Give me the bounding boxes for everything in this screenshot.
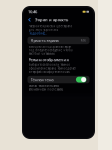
staticText: Авто <box>80 39 86 42</box>
staticText: Тёмная тема <box>30 77 53 82</box>
staticText: оформление экрана. Тёмное делает <box>28 67 75 70</box>
staticText: Яркость экрана <box>30 38 58 43</box>
staticText: Подробнее… <box>28 32 46 35</box>
staticText: текст был читаемым. <box>28 52 55 55</box>
staticText: Режим отображения <box>28 57 68 62</box>
staticText: для этого устройства. <box>28 28 58 31</box>
staticText: Тёмная тема включается <box>28 84 59 88</box>
button[interactable]: Тёмная тема <box>27 76 89 83</box>
staticText: Автояркость подстраивает экран <box>28 45 71 48</box>
button[interactable]: Back <box>27 17 31 23</box>
staticText: интерфейс комфортнее ночью. <box>28 70 70 74</box>
staticText: Экран и яркость <box>35 17 68 22</box>
staticText: автоматически после заката. <box>28 88 63 91</box>
staticText: Настройте яркость и цвет экрана <box>28 24 71 28</box>
staticText: под внешнее освещение, чтобы <box>28 48 72 52</box>
staticText: 16:46 <box>28 9 37 14</box>
staticText: Выберите светлое или тёмное <box>28 63 69 67</box>
